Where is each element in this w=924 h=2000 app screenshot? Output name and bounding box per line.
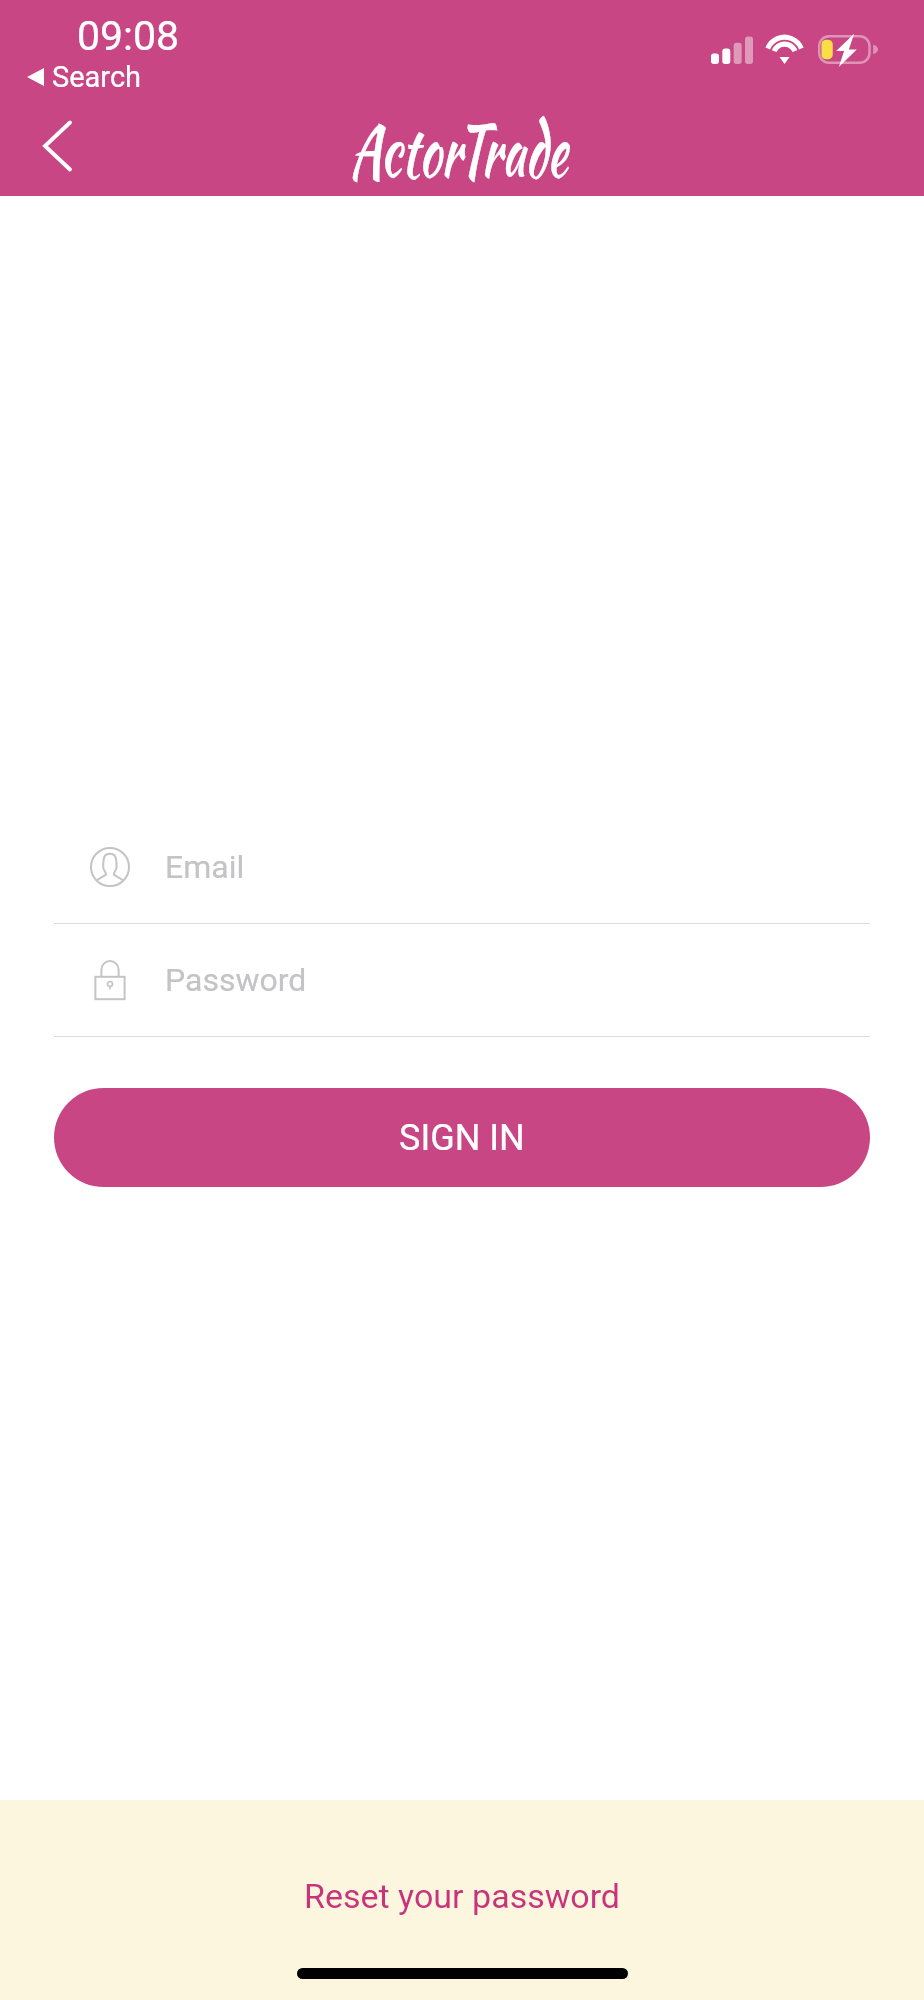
button[interactable]: Password [54, 924, 870, 1036]
button[interactable]: Back [20, 108, 92, 184]
staticText: ActorTrade [350, 98, 567, 202]
staticText: Search [52, 60, 142, 94]
button[interactable]: SIGN IN [54, 1088, 870, 1187]
staticText: Password [165, 961, 307, 999]
staticText: Email [165, 848, 245, 886]
staticText: SIGN IN [399, 1117, 525, 1159]
button[interactable]: Reset your password [304, 1876, 621, 1916]
button[interactable]: Email [54, 811, 870, 923]
staticText: 09:08 [77, 12, 180, 60]
